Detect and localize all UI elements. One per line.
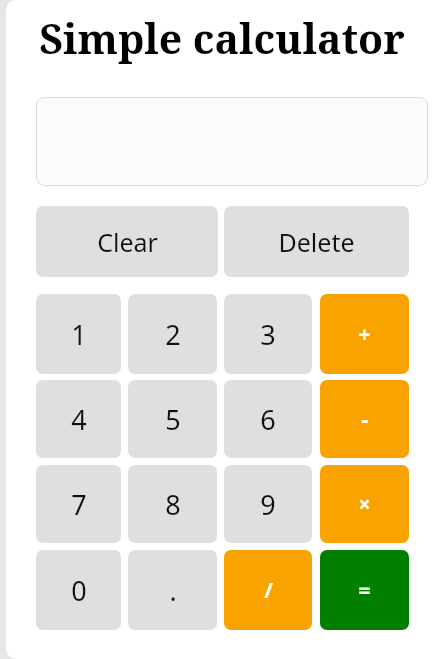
staticText: Delete: [278, 225, 355, 259]
staticText: 7: [71, 486, 87, 523]
button[interactable]: =: [320, 550, 409, 630]
button[interactable]: 6: [224, 380, 312, 458]
button[interactable]: /: [224, 550, 312, 630]
button[interactable]: 7: [36, 465, 121, 543]
button[interactable]: -: [320, 380, 409, 458]
staticText: +: [358, 320, 371, 349]
button[interactable]: +: [320, 294, 409, 374]
button[interactable]: 1: [36, 294, 121, 374]
staticText: .: [169, 572, 177, 609]
staticText: 9: [260, 486, 276, 523]
staticText: Clear: [97, 225, 158, 259]
button[interactable]: 5: [128, 380, 217, 458]
button[interactable]: Clear: [36, 206, 218, 277]
staticText: 3: [260, 316, 276, 353]
button[interactable]: .: [128, 550, 217, 630]
staticText: 8: [165, 486, 181, 523]
staticText: /: [264, 576, 273, 605]
button[interactable]: 3: [224, 294, 312, 374]
button[interactable]: 8: [128, 465, 217, 543]
staticText: 5: [165, 401, 181, 438]
button[interactable]: Delete: [224, 206, 409, 277]
staticText: =: [358, 576, 371, 605]
staticText: Simple calculator: [39, 10, 405, 66]
staticText: 0: [71, 572, 87, 609]
staticText: 6: [260, 401, 276, 438]
button[interactable]: 9: [224, 465, 312, 543]
button[interactable]: Expression input: [36, 97, 428, 186]
staticText: 1: [71, 316, 87, 353]
button[interactable]: 4: [36, 380, 121, 458]
staticText: -: [361, 405, 368, 434]
staticText: ×: [358, 490, 371, 519]
staticText: 4: [71, 401, 87, 438]
button[interactable]: 2: [128, 294, 217, 374]
button[interactable]: 0: [36, 550, 121, 630]
button[interactable]: ×: [320, 465, 409, 543]
staticText: 2: [165, 316, 181, 353]
